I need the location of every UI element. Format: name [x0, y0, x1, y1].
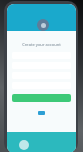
button[interactable]: [12, 94, 71, 102]
button[interactable]: Profile photo: [37, 19, 49, 31]
button[interactable]: [38, 111, 45, 115]
staticText: Create your account: [7, 42, 76, 47]
